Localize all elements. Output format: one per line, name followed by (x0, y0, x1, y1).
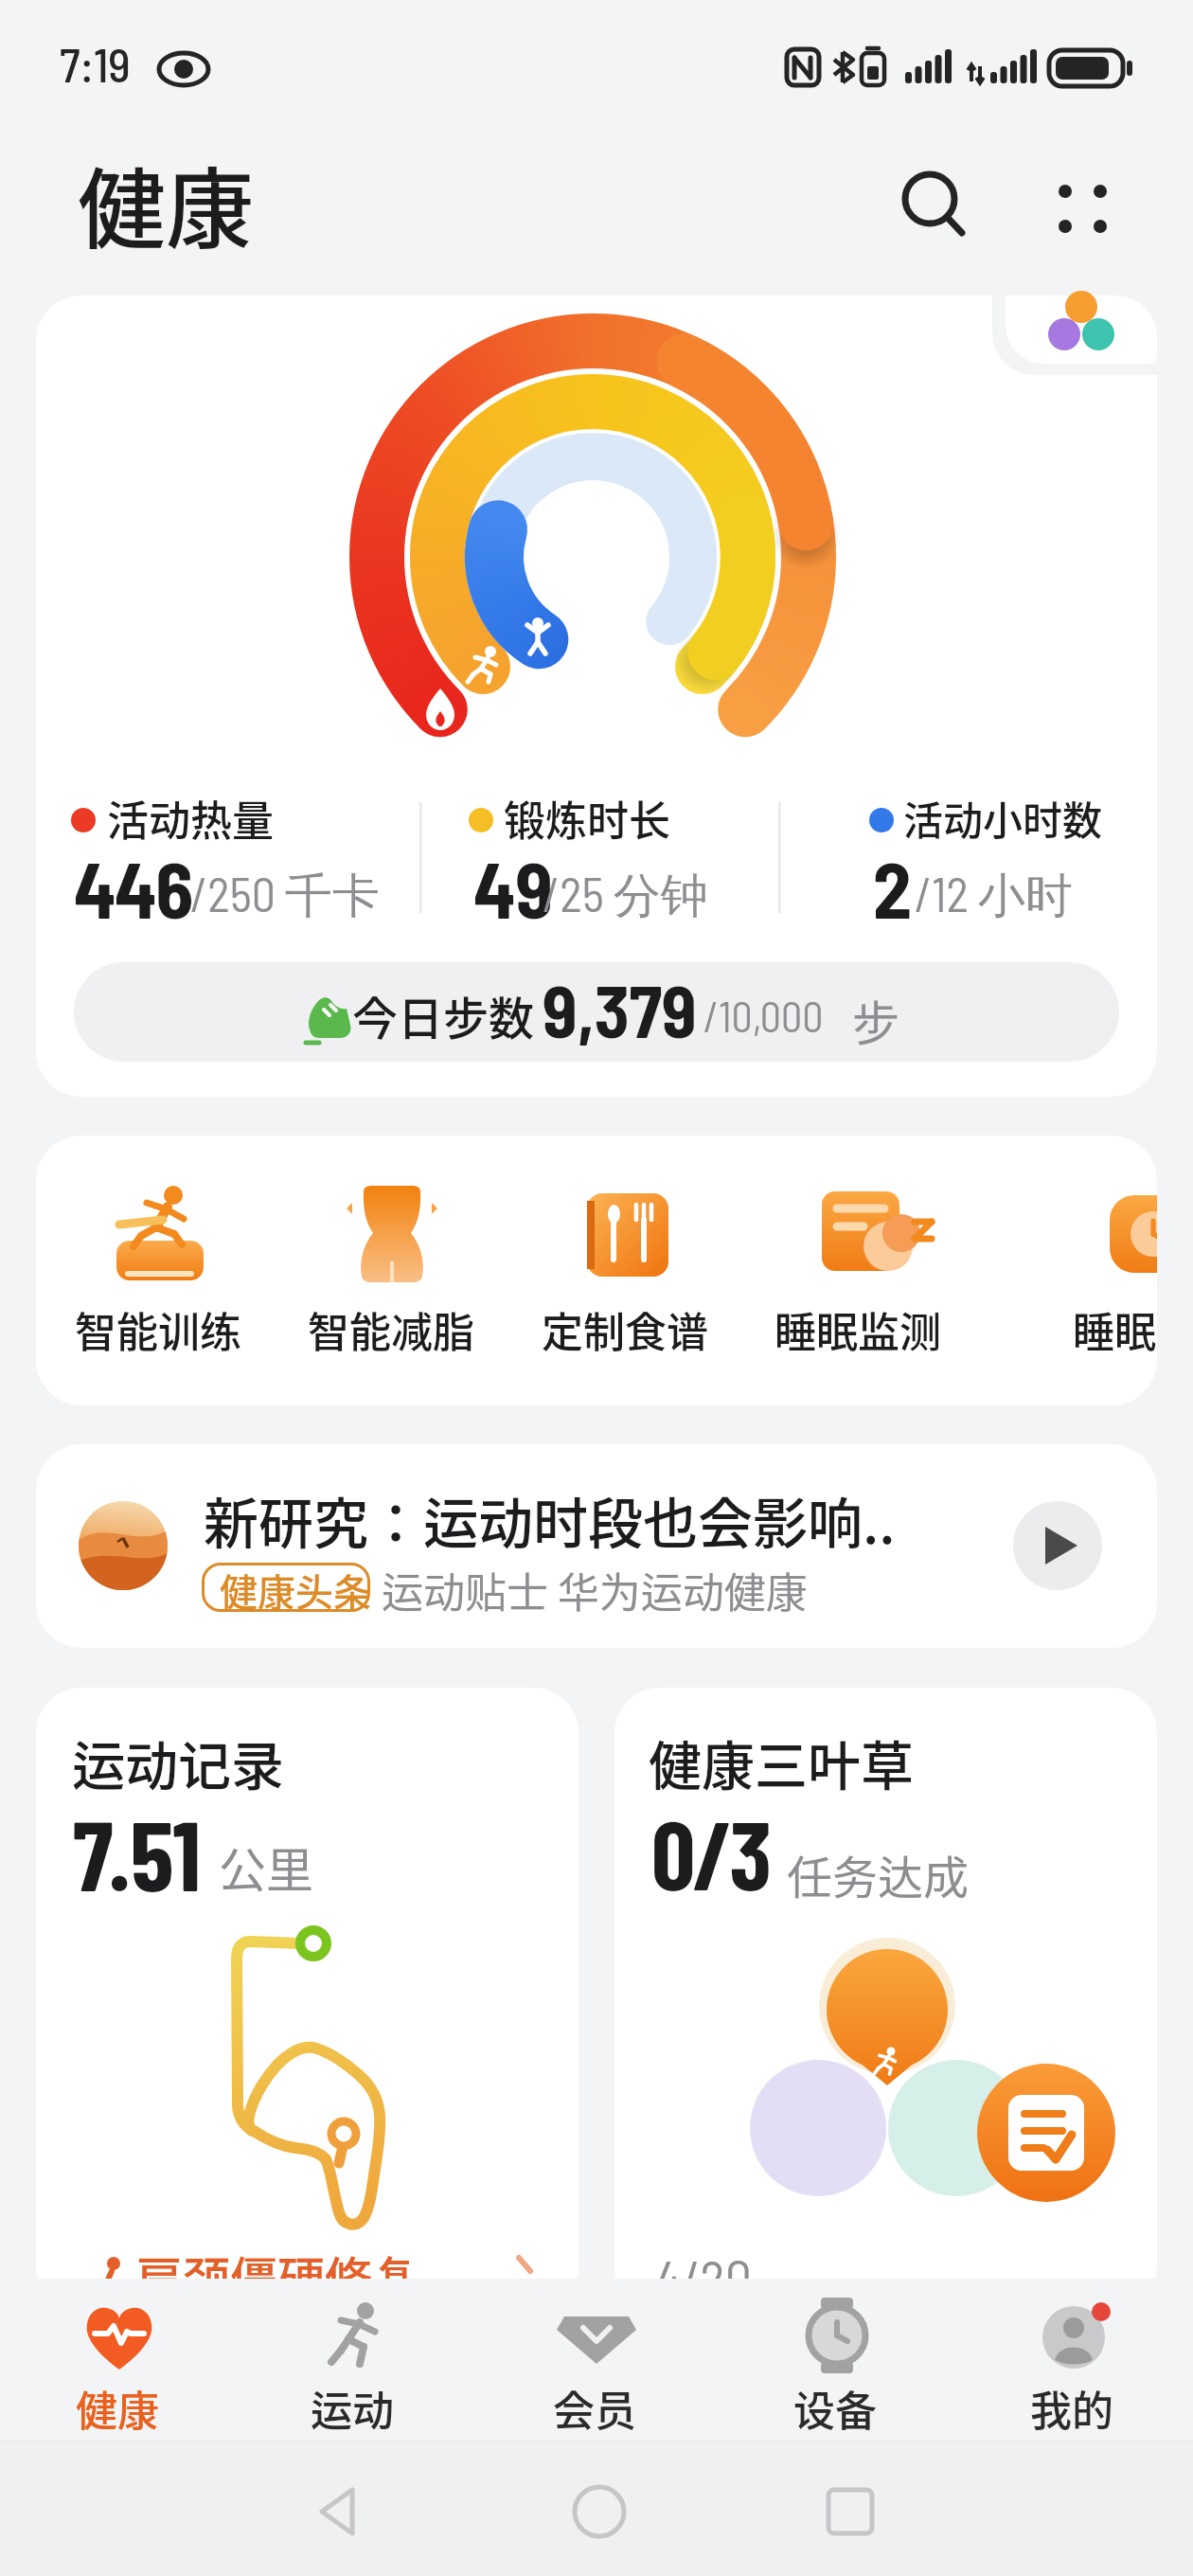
staticText: 公里 (219, 1833, 313, 1901)
staticText: 0/3 (651, 1794, 770, 1909)
button[interactable] (739, 2292, 929, 2434)
staticText: 7:19 (60, 35, 131, 92)
button[interactable] (38, 2292, 227, 2434)
staticText: 9,379 (543, 966, 697, 1052)
button[interactable] (55, 1174, 265, 1364)
button[interactable] (272, 2292, 461, 2434)
button[interactable] (1006, 295, 1157, 364)
button[interactable] (74, 962, 1119, 1062)
staticText: 运动记录 (72, 1724, 284, 1800)
staticText: 睡眠 (1073, 1299, 1156, 1360)
button[interactable] (36, 1136, 1157, 1405)
staticText: /10,000 (703, 991, 824, 1041)
staticText: 智能减脂 (308, 1299, 474, 1360)
button[interactable] (973, 2292, 1163, 2434)
button[interactable] (1040, 165, 1127, 233)
staticText: 运动 (311, 2378, 394, 2439)
staticText: 会员 (553, 2378, 636, 2439)
staticText: 今日步数 (352, 982, 535, 1048)
button[interactable] (886, 155, 973, 242)
staticText: 锻炼时长 (504, 788, 670, 849)
staticText: 活动小时数 (903, 789, 1103, 847)
staticText: 健康 (78, 139, 254, 267)
staticText: 健康三叶草 (649, 1724, 914, 1800)
button[interactable] (506, 2292, 695, 2434)
staticText: 任务达成 (787, 1841, 970, 1907)
staticText: 49 (473, 841, 554, 934)
staticText: 我的 (1030, 2378, 1113, 2439)
staticText: 活动热量 (107, 788, 274, 849)
staticText: 健康头条 (220, 1563, 371, 1618)
staticText: 2 (873, 841, 912, 934)
staticText: 智能训练 (75, 1299, 241, 1360)
staticText: 7.51 (73, 1793, 202, 1911)
button[interactable] (36, 1444, 1157, 1648)
staticText: 4/20 (655, 2246, 753, 2310)
staticText: 步 (852, 986, 899, 1054)
staticText: 新研究：运动时段也会影响.. (204, 1480, 896, 1560)
button[interactable] (36, 1688, 579, 2313)
staticText: 设备 (793, 2378, 877, 2439)
staticText: 定制食谱 (542, 1299, 708, 1360)
button[interactable] (757, 1174, 967, 1364)
staticText: 运动贴士 华为运动健康 (382, 1560, 808, 1620)
staticText: 健康 (76, 2378, 159, 2439)
staticText: 446 (74, 841, 192, 934)
button[interactable] (614, 1688, 1157, 2313)
staticText: /250 千卡 (190, 865, 381, 926)
button[interactable] (1013, 1501, 1102, 1590)
staticText: /25 分钟 (543, 865, 708, 926)
button[interactable] (36, 295, 1157, 1097)
button[interactable] (523, 1174, 733, 1364)
button[interactable] (289, 1174, 499, 1364)
staticText: 肩颈僵硬修复 (135, 2242, 419, 2310)
staticText: /12 小时 (915, 865, 1073, 926)
staticText: 睡眠监测 (775, 1299, 941, 1360)
button[interactable] (990, 1174, 1193, 1364)
